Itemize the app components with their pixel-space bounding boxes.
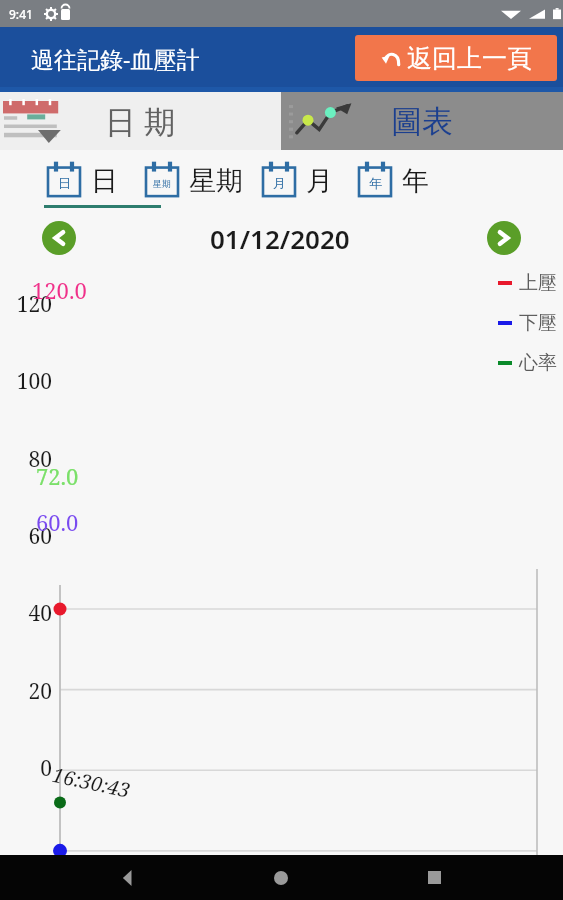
button[interactable]: 月 (259, 160, 333, 202)
button[interactable]: 星期 (142, 160, 243, 202)
staticText: 0 (0, 754, 52, 783)
staticText: 年 (369, 175, 382, 191)
staticText: 60.0 (36, 507, 79, 537)
staticText: 月 (306, 164, 333, 198)
staticText: 返回上一頁 (407, 43, 532, 74)
staticText: 60 (0, 522, 52, 551)
staticText: 圖表 (391, 102, 453, 141)
staticText: 72.0 (36, 461, 79, 491)
staticText: 120 (0, 290, 52, 319)
button[interactable]: 圖表 (281, 92, 563, 150)
staticText: 日 期 (105, 100, 176, 142)
staticText: 9:41 (9, 6, 33, 22)
button[interactable]: Recent apps (410, 855, 458, 900)
staticText: 日 (91, 164, 118, 198)
button[interactable]: 日 期 (0, 92, 281, 150)
button[interactable]: Home (257, 855, 305, 900)
staticText: 80 (0, 445, 52, 474)
staticText: 下壓 (519, 311, 557, 335)
staticText: 40 (0, 599, 52, 628)
staticText: 上壓 (519, 271, 557, 295)
staticText: 星期 (189, 164, 243, 198)
staticText: 16:30:43 (50, 761, 133, 804)
button[interactable]: 返回上一頁 (355, 35, 557, 81)
button[interactable]: Next (485, 219, 523, 257)
staticText: 20 (0, 677, 52, 706)
staticText: 心率 (519, 351, 557, 375)
staticText: 年 (402, 164, 429, 198)
button[interactable]: 年 (355, 160, 429, 202)
staticText: 過往記錄-血壓計 (31, 43, 200, 74)
staticText: 01/12/2020 (210, 221, 350, 256)
staticText: 月 (273, 175, 286, 191)
staticText: 星期 (153, 178, 171, 189)
staticText: 120.0 (32, 275, 87, 305)
button[interactable]: Back (104, 855, 152, 900)
staticText: 日 (58, 175, 71, 191)
button[interactable]: 日 (44, 160, 118, 202)
staticText: 100 (0, 367, 52, 396)
button[interactable]: Previous (40, 219, 78, 257)
